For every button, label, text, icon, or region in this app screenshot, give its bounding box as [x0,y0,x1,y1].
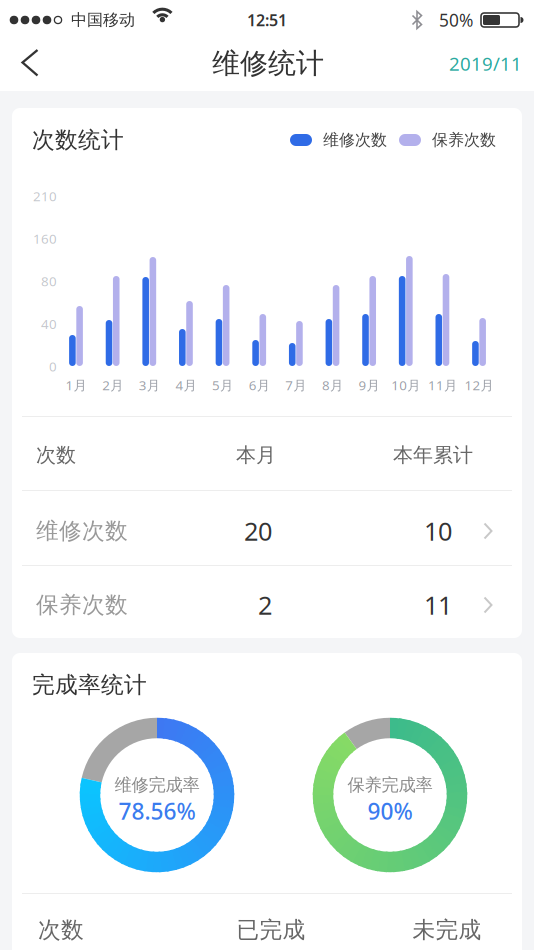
staticText: 次数 [36,443,76,467]
staticText: 次数 [38,916,84,944]
staticText: 10月 [391,376,420,394]
staticText: 12:51 [247,9,287,31]
staticText: 未完成 [412,916,481,944]
staticText: 78.56% [118,796,195,826]
staticText: 11月 [428,376,457,394]
staticText: 6月 [249,376,270,394]
staticText: 次数统计 [32,126,124,154]
staticText: 0 [49,357,57,375]
staticText: 2019/11 [449,51,522,76]
staticText: 7月 [285,376,306,394]
staticText: 80 [41,272,57,290]
staticText: 210 [33,187,57,205]
staticText: 已完成 [236,916,305,944]
staticText: 中国移动 [71,10,135,30]
staticText: 10 [424,514,452,548]
button[interactable]: 维修次数 [12,490,522,565]
staticText: 维修次数 [323,130,387,150]
staticText: 保养完成率 [347,774,432,796]
staticText: 维修次数 [36,517,128,545]
staticText: 2月 [102,376,123,394]
staticText: 90% [367,796,412,826]
staticText: 2 [258,588,272,622]
staticText: 本年累计 [393,443,473,467]
staticText: 11 [424,588,452,622]
staticText: 保养次数 [432,130,496,150]
staticText: 4月 [175,376,196,394]
staticText: 本月 [236,443,276,467]
staticText: 20 [244,514,272,548]
staticText: 5月 [212,376,233,394]
staticText: 保养次数 [36,591,128,619]
staticText: 3月 [139,376,160,394]
staticText: 12月 [464,376,493,394]
staticText: 8月 [322,376,343,394]
staticText: 维修完成率 [114,774,199,796]
staticText: 完成率统计 [32,671,147,699]
staticText: 维修统计 [212,46,324,81]
staticText: 50% [439,8,473,31]
staticText: 1月 [65,376,86,394]
button[interactable]: 2019/11 [392,43,522,83]
button[interactable]: 保养次数 [12,564,522,639]
staticText: 9月 [359,376,380,394]
staticText: 160 [33,230,57,247]
button[interactable] [14,46,48,80]
staticText: 40 [41,315,57,333]
